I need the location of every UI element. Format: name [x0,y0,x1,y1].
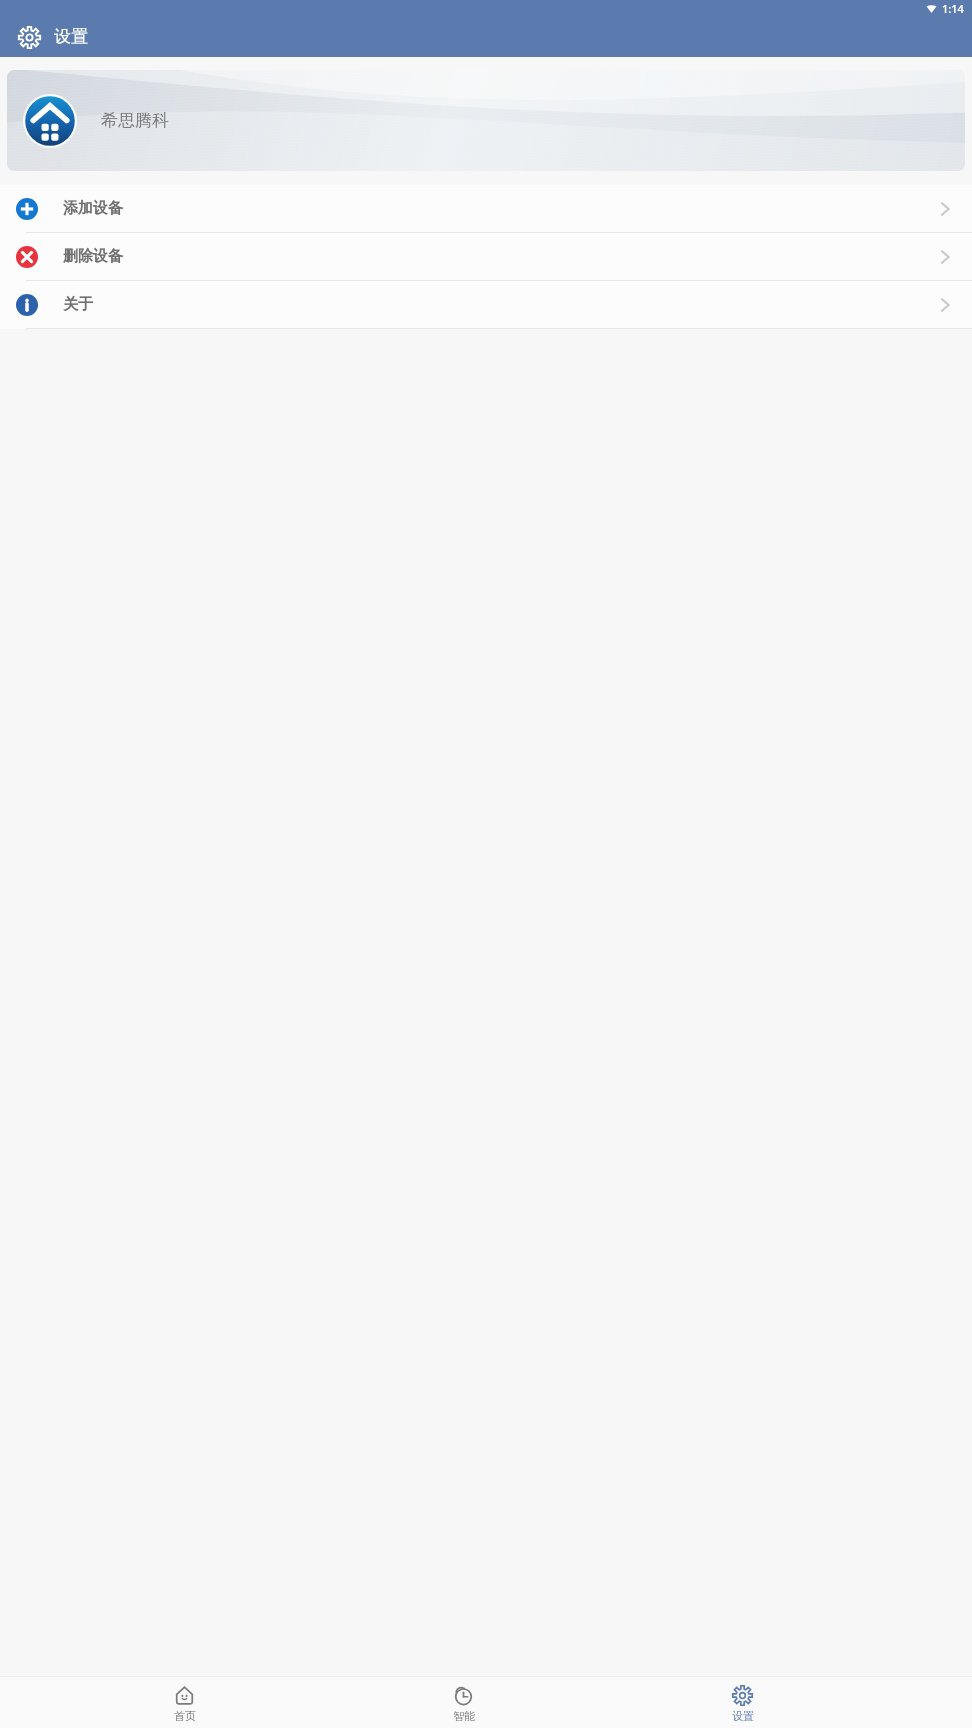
button[interactable]: 删除设备 [0,233,972,280]
button[interactable]: 希思腾科 [7,70,965,171]
button[interactable]: Settings [14,22,44,52]
staticText: 删除设备 [63,247,123,266]
staticText: 添加设备 [63,199,123,218]
staticText: 智能 [453,1709,475,1723]
button[interactable]: 关于 [0,281,972,328]
staticText: 首页 [174,1709,196,1723]
button[interactable]: 设置 [603,1682,882,1723]
button[interactable]: 智能 [324,1682,603,1723]
staticText: 1:14 [942,1,964,16]
staticText: 设置 [54,26,88,47]
staticText: 关于 [63,295,93,314]
button[interactable]: 添加设备 [0,185,972,232]
staticText: 设置 [732,1709,754,1723]
button[interactable]: 首页 [45,1682,324,1723]
staticText: 希思腾科 [101,110,169,131]
